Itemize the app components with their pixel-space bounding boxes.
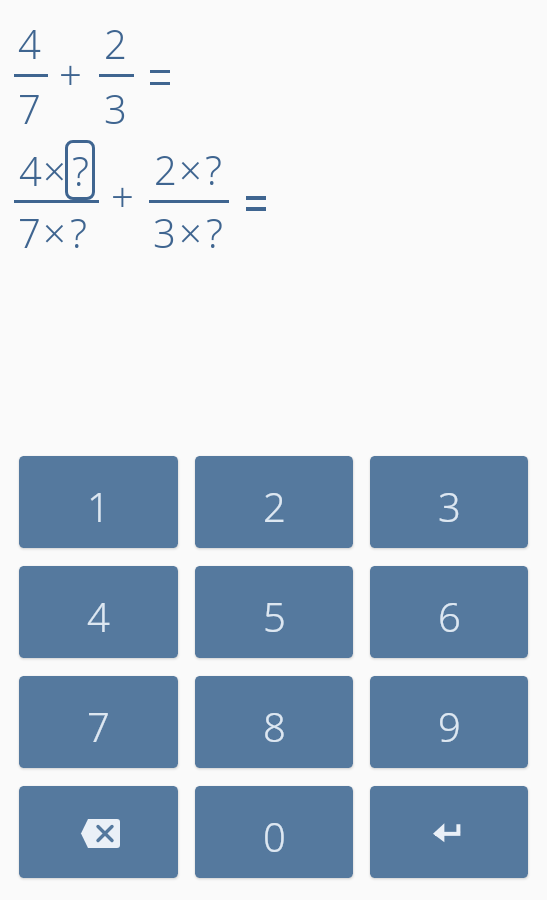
button[interactable]: 5 [195, 566, 353, 658]
staticText: 1 [87, 479, 110, 533]
staticText: × [43, 205, 66, 259]
staticText: 2 [154, 142, 177, 196]
button[interactable]: 1 [19, 456, 178, 548]
staticText: ? [206, 205, 223, 259]
button[interactable]: 7 [19, 676, 178, 768]
staticText: 5 [263, 589, 286, 643]
staticText: 8 [263, 699, 286, 753]
button[interactable]: 0 [195, 786, 353, 878]
button[interactable]: 2 [195, 456, 353, 548]
staticText: 7 [87, 699, 110, 753]
staticText: 2 [263, 479, 286, 533]
staticText: 7 [18, 205, 41, 259]
staticText: 4 [19, 143, 42, 197]
staticText: 3 [153, 205, 176, 259]
staticText: 0 [263, 809, 286, 863]
staticText: 4 [18, 16, 41, 70]
staticText: 7 [18, 81, 41, 135]
staticText: + [59, 47, 82, 101]
staticText: × [43, 143, 66, 197]
button[interactable]: 8 [195, 676, 353, 768]
staticText: 2 [104, 16, 127, 70]
staticText: × [179, 142, 202, 196]
staticText: 9 [438, 699, 461, 753]
staticText: 6 [438, 589, 461, 643]
staticText: 4 [87, 589, 110, 643]
button[interactable] [370, 786, 528, 878]
button[interactable] [19, 786, 178, 878]
button[interactable]: 4 [19, 566, 178, 658]
button[interactable]: 6 [370, 566, 528, 658]
button[interactable]: 3 [370, 456, 528, 548]
staticText: ? [70, 205, 87, 259]
staticText: ? [205, 142, 222, 196]
staticText: 3 [104, 81, 127, 135]
staticText: ? [72, 143, 89, 197]
staticText: 3 [438, 479, 461, 533]
button[interactable]: 9 [370, 676, 528, 768]
staticText: + [111, 169, 134, 223]
staticText: × [179, 205, 202, 259]
